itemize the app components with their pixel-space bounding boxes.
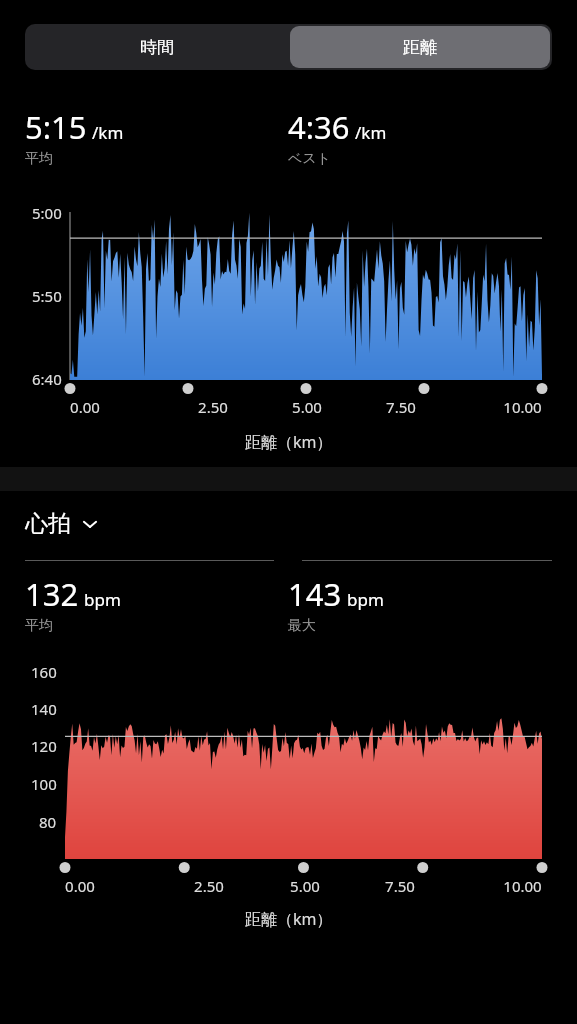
staticText: 時間 xyxy=(140,37,174,58)
staticText: 100 xyxy=(31,774,57,794)
staticText: 5:50 xyxy=(32,286,62,306)
staticText: 平均 xyxy=(25,617,53,635)
staticText: 心拍 xyxy=(25,509,71,538)
staticText: bpm xyxy=(347,588,384,611)
staticText: 距離（km） xyxy=(245,908,333,930)
staticText: 5:00 xyxy=(32,203,62,223)
other: Expand heart rate xyxy=(81,515,99,533)
staticText: ベスト xyxy=(288,150,331,168)
button[interactable]: 距離 xyxy=(290,26,550,68)
staticText: 平均 xyxy=(25,150,53,168)
staticText: 160 xyxy=(31,662,57,682)
staticText: 0.00 xyxy=(70,397,100,417)
staticText: 143 xyxy=(288,573,342,615)
staticText: 5:15 xyxy=(25,106,87,148)
staticText: 80 xyxy=(39,812,57,832)
staticText: 2.50 xyxy=(198,397,228,417)
staticText: bpm xyxy=(84,588,121,611)
staticText: 6:40 xyxy=(32,369,62,389)
staticText: 7.50 xyxy=(386,397,416,417)
button[interactable]: 心拍 xyxy=(25,509,99,538)
staticText: 10.00 xyxy=(503,876,542,896)
staticText: /km xyxy=(355,121,387,144)
staticText: 10.00 xyxy=(503,397,542,417)
staticText: 距離 xyxy=(403,37,437,58)
staticText: 7.50 xyxy=(385,876,415,896)
staticText: /km xyxy=(92,121,124,144)
staticText: 120 xyxy=(31,736,57,756)
staticText: 5.00 xyxy=(292,397,322,417)
button[interactable]: 時間 xyxy=(25,24,288,70)
staticText: 距離（km） xyxy=(245,431,333,453)
staticText: 4:36 xyxy=(288,106,350,148)
staticText: 0.00 xyxy=(65,876,95,896)
staticText: 140 xyxy=(31,699,57,719)
staticText: 最大 xyxy=(288,617,316,635)
staticText: 132 xyxy=(25,573,79,615)
staticText: 2.50 xyxy=(194,876,224,896)
staticText: 5.00 xyxy=(290,876,320,896)
